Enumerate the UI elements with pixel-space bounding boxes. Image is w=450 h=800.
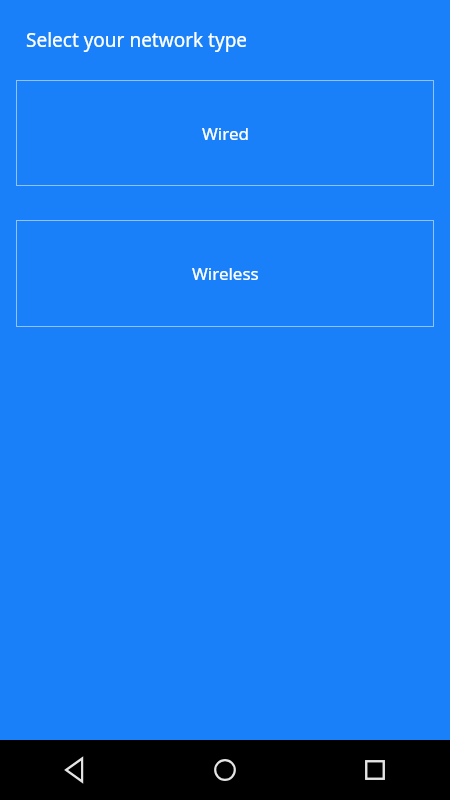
staticText: Wireless <box>192 262 259 285</box>
button[interactable]: Wireless <box>16 220 434 327</box>
button[interactable]: Recent apps <box>300 740 450 800</box>
button[interactable]: Wired <box>16 80 434 186</box>
staticText: Select your network type <box>26 27 248 53</box>
button[interactable]: Home <box>150 740 300 800</box>
staticText: Wired <box>202 122 249 145</box>
button[interactable]: Back <box>0 740 150 800</box>
